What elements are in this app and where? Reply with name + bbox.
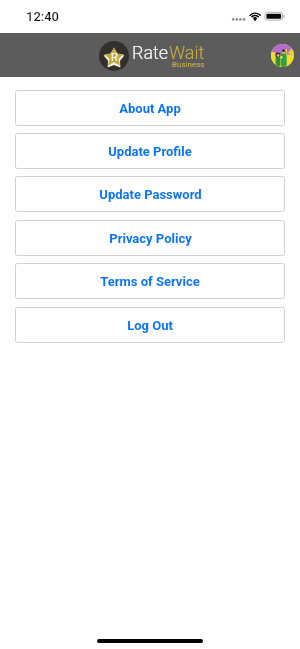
button[interactable]: Update Password — [15, 176, 285, 212]
staticText: Update Profile — [108, 144, 192, 159]
button[interactable]: Profile — [271, 44, 294, 67]
button[interactable]: Terms of Service — [15, 263, 285, 299]
button[interactable]: Log Out — [15, 307, 285, 343]
button[interactable]: Update Profile — [15, 133, 285, 169]
staticText: Wait — [169, 42, 205, 63]
staticText: Rate — [132, 42, 169, 63]
staticText: R — [111, 51, 118, 64]
staticText: Terms of Service — [100, 274, 200, 289]
staticText: Update Password — [99, 187, 202, 202]
staticText: Privacy Policy — [109, 231, 192, 246]
button[interactable]: Privacy Policy — [15, 220, 285, 256]
staticText: Business — [172, 60, 205, 69]
staticText: About App — [119, 101, 181, 116]
staticText: Log Out — [127, 318, 173, 333]
staticText: 12:40 — [26, 9, 59, 24]
button[interactable]: About App — [15, 90, 285, 126]
